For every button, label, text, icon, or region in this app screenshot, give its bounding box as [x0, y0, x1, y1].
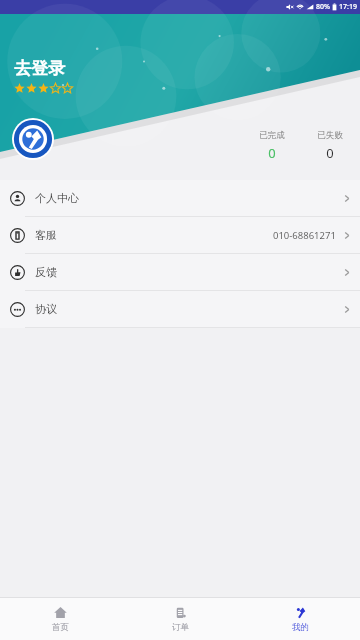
- staticText: 首页: [52, 622, 69, 633]
- staticText: 我的: [292, 622, 309, 633]
- staticText: 010-68861271: [273, 229, 336, 242]
- staticText: 订单: [172, 622, 189, 633]
- staticText: 0: [268, 144, 276, 162]
- staticText: 17:19: [339, 2, 357, 12]
- button[interactable]: 已失败: [312, 130, 348, 162]
- button[interactable]: 首页: [0, 598, 120, 640]
- button[interactable]: 客服: [0, 217, 360, 253]
- staticText: 客服: [35, 228, 57, 242]
- staticText: 个人中心: [35, 191, 79, 205]
- button[interactable]: 去登录: [14, 58, 65, 79]
- staticText: 已完成: [259, 130, 285, 141]
- button[interactable]: 订单: [120, 598, 240, 640]
- staticText: 80%: [316, 2, 330, 12]
- staticText: 反馈: [35, 265, 57, 279]
- button[interactable]: 协议: [0, 291, 360, 327]
- button[interactable]: 头像: [12, 118, 54, 160]
- staticText: 0: [326, 144, 334, 162]
- button[interactable]: 已完成: [254, 130, 290, 162]
- staticText: 协议: [35, 302, 57, 316]
- button[interactable]: 我的: [240, 598, 360, 640]
- button[interactable]: 个人中心: [0, 180, 360, 216]
- button[interactable]: 反馈: [0, 254, 360, 290]
- staticText: 已失败: [317, 130, 343, 141]
